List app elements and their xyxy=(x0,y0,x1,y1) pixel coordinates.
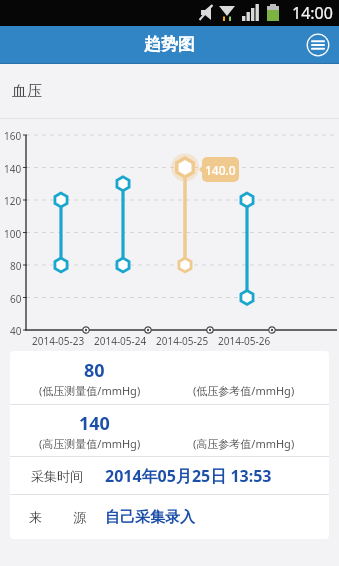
staticText: 2014-05-24 xyxy=(94,334,147,346)
staticText: (高压测量值/mmHg) xyxy=(39,436,141,451)
button[interactable]: 80 xyxy=(10,351,329,404)
staticText: 100 xyxy=(4,227,22,239)
staticText: 血压 xyxy=(12,82,42,101)
staticText: 160 xyxy=(4,129,22,141)
staticText: (低压测量值/mmHg) xyxy=(39,383,141,398)
staticText: 采集时间 xyxy=(31,468,83,484)
staticText: 140 xyxy=(79,411,110,436)
staticText: 60 xyxy=(10,292,22,304)
staticText: 120 xyxy=(4,194,22,206)
staticText: 趋势图 xyxy=(144,34,195,55)
staticText: 140 xyxy=(4,162,22,174)
staticText: 14:00 xyxy=(292,2,333,24)
button[interactable]: 来 xyxy=(10,495,329,539)
staticText: 40 xyxy=(10,324,22,336)
button[interactable]: 采集时间 xyxy=(10,457,329,494)
staticText: 80 xyxy=(10,259,22,271)
staticText: 80 xyxy=(84,358,105,383)
staticText: 2014-05-26 xyxy=(218,334,271,346)
staticText: (高压参考值/mmHg) xyxy=(193,436,295,451)
staticText: 自己采集录入 xyxy=(105,508,195,527)
staticText: 140.0 xyxy=(205,162,236,178)
staticText: 来 xyxy=(29,509,42,525)
staticText: 2014-05-23 xyxy=(32,334,85,346)
button[interactable] xyxy=(305,32,331,58)
staticText: (低压参考值/mmHg) xyxy=(193,383,295,398)
staticText: 2014-05-25 xyxy=(156,334,209,346)
button[interactable]: 140 xyxy=(10,405,329,456)
staticText: 2014年05月25日 13:53 xyxy=(105,465,272,487)
staticText: 源 xyxy=(73,509,86,525)
